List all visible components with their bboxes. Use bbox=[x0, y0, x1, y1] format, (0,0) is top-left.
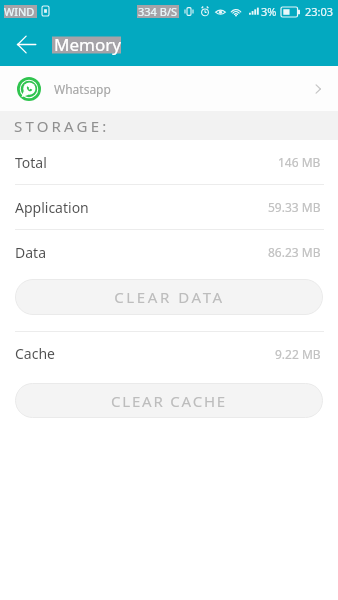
staticText: Cache bbox=[15, 344, 55, 363]
button[interactable]: Back bbox=[8, 26, 44, 62]
button[interactable]: Application bbox=[0, 185, 338, 229]
button[interactable]: CLEAR CACHE bbox=[15, 383, 323, 418]
staticText: 334 B/S bbox=[138, 4, 178, 19]
staticText: Memory bbox=[54, 33, 121, 56]
button[interactable]: Whatsapp bbox=[0, 66, 338, 111]
staticText: 86.23 MB bbox=[268, 244, 321, 260]
staticText: Total bbox=[15, 153, 47, 172]
staticText: STORAGE: bbox=[14, 116, 110, 136]
button[interactable]: Data bbox=[0, 230, 338, 274]
button[interactable]: Cache bbox=[0, 332, 338, 375]
staticText: 59.33 MB bbox=[268, 199, 321, 215]
staticText: 23:03 bbox=[305, 4, 334, 19]
staticText: CLEAR DATA bbox=[114, 287, 225, 307]
staticText: 146 MB bbox=[278, 154, 321, 170]
staticText: 3% bbox=[261, 4, 277, 19]
staticText: CLEAR CACHE bbox=[111, 391, 227, 411]
button[interactable]: CLEAR DATA bbox=[15, 279, 323, 315]
staticText: Application bbox=[15, 198, 89, 217]
staticText: 9.22 MB bbox=[275, 346, 321, 362]
staticText: Whatsapp bbox=[54, 81, 111, 97]
button[interactable]: Total bbox=[0, 140, 338, 184]
other: Open app details bbox=[312, 83, 324, 95]
staticText: WIND bbox=[4, 4, 35, 19]
staticText: Data bbox=[15, 243, 46, 262]
